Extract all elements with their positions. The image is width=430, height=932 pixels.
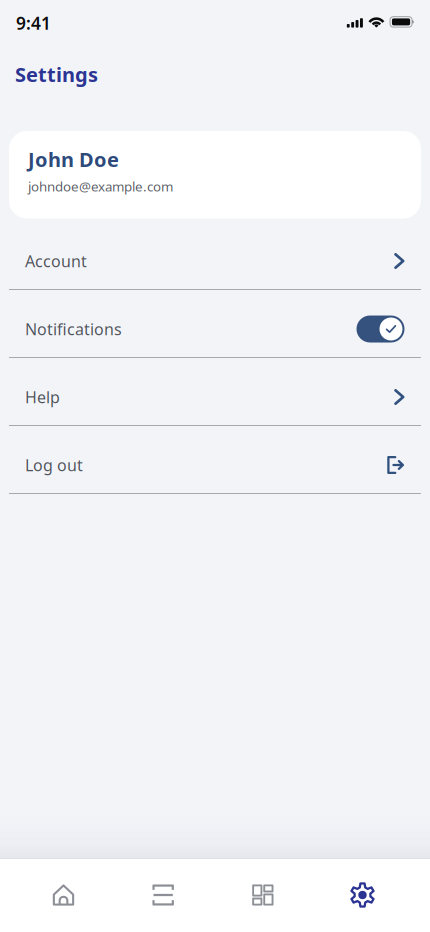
button[interactable]: Help bbox=[9, 358, 421, 426]
button[interactable]: Account bbox=[9, 222, 421, 290]
button[interactable]: Log out bbox=[9, 426, 421, 494]
staticText: John Doe bbox=[28, 146, 119, 173]
staticText: Settings bbox=[15, 61, 98, 88]
staticText: Notifications bbox=[25, 318, 122, 340]
staticText: Account bbox=[25, 250, 87, 272]
button[interactable]: Apps bbox=[240, 859, 286, 931]
staticText: Help bbox=[25, 386, 60, 408]
button[interactable]: Notifications bbox=[9, 290, 421, 358]
button[interactable]: Feed bbox=[140, 859, 186, 931]
button[interactable]: Home bbox=[40, 859, 86, 931]
staticText: johndoe@example.com bbox=[28, 178, 173, 195]
staticText: 9:41 bbox=[16, 11, 51, 34]
staticText: Log out bbox=[25, 454, 83, 476]
button[interactable]: Settings bbox=[339, 859, 385, 931]
